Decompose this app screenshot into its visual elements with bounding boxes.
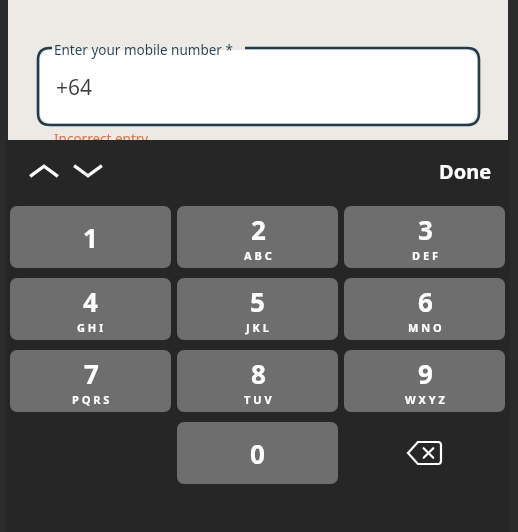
staticText: 8 [251,356,266,391]
staticText: A B C [244,248,272,263]
button[interactable]: 9 [344,350,505,412]
button[interactable]: Backspace [344,422,505,484]
button[interactable]: 7 [10,350,171,412]
staticText: Done [439,158,492,185]
staticText: 2 [251,212,266,247]
staticText: 0 [250,436,265,471]
button[interactable]: 8 [177,350,338,412]
button[interactable]: 1 [10,206,171,268]
staticText: Enter your mobile number * [54,41,233,59]
staticText: M N O [408,320,442,335]
staticText: T U V [244,392,272,407]
staticText: 3 [418,212,433,247]
button[interactable]: 3 [344,206,505,268]
staticText: +64 [56,73,93,102]
button[interactable]: +64 [38,48,479,125]
button[interactable]: 5 [177,278,338,340]
button[interactable]: 4 [10,278,171,340]
button[interactable]: Done [433,152,498,191]
staticText: 6 [418,284,433,319]
staticText: 9 [418,356,433,391]
staticText: G H I [77,320,104,335]
staticText: W X Y Z [405,392,445,407]
button[interactable]: 0 [177,422,338,484]
staticText: Incorrect entry [54,130,149,148]
button[interactable]: 6 [344,278,505,340]
button[interactable]: 2 [177,206,338,268]
staticText: D E F [412,248,438,263]
button[interactable]: Previous field [22,150,66,192]
staticText: 7 [84,356,99,391]
staticText: J K L [246,320,269,335]
staticText: 1 [83,220,98,255]
button[interactable]: Next field [66,150,110,192]
staticText: P Q R S [72,392,110,407]
staticText: 4 [83,284,98,319]
staticText: 5 [250,284,265,319]
